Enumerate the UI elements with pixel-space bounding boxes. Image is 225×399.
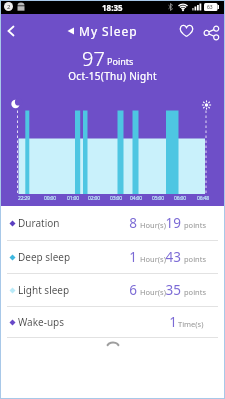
staticText: 6 bbox=[103, 281, 137, 299]
staticText: 00:00 bbox=[40, 195, 60, 202]
button[interactable] bbox=[2, 22, 20, 40]
staticText: 8 bbox=[103, 214, 137, 232]
staticText: 43 bbox=[147, 248, 181, 266]
staticText: 1 bbox=[103, 248, 137, 266]
staticText: 63 bbox=[207, 4, 213, 11]
button[interactable]: Duration bbox=[0, 206, 225, 241]
button[interactable]: Light sleep bbox=[0, 274, 225, 307]
staticText: Points bbox=[107, 55, 134, 67]
button[interactable]: Wake-ups bbox=[0, 307, 225, 338]
staticText: points bbox=[184, 220, 207, 230]
staticText: 2 bbox=[7, 3, 11, 11]
staticText: Oct-15(Thu) Night bbox=[0, 69, 225, 83]
staticText: 01:00 bbox=[63, 195, 83, 202]
staticText: 02:00 bbox=[84, 195, 104, 202]
staticText: points bbox=[184, 287, 207, 297]
staticText: Hour(s) bbox=[140, 287, 166, 297]
staticText: 04:00 bbox=[126, 195, 146, 202]
staticText: Deep sleep bbox=[18, 250, 71, 264]
button[interactable]: My Sleep bbox=[67, 23, 138, 39]
button[interactable] bbox=[0, 338, 225, 356]
staticText: 18:35 bbox=[102, 2, 123, 13]
staticText: Light sleep bbox=[18, 283, 70, 297]
staticText: Duration bbox=[18, 216, 60, 230]
staticText: Wake-ups bbox=[18, 315, 65, 329]
button[interactable] bbox=[203, 24, 220, 41]
staticText: 05:00 bbox=[148, 195, 168, 202]
button[interactable]: Deep sleep bbox=[0, 241, 225, 274]
staticText: 06:00 bbox=[170, 195, 190, 202]
staticText: My Sleep bbox=[79, 23, 138, 39]
button[interactable] bbox=[178, 23, 195, 40]
staticText: 03:00 bbox=[106, 195, 126, 202]
staticText: Hour(s) bbox=[140, 220, 166, 230]
staticText: 97 bbox=[82, 45, 105, 72]
staticText: 06:48 bbox=[193, 195, 213, 202]
staticText: 22:29 bbox=[14, 195, 34, 202]
staticText: points bbox=[184, 254, 207, 264]
staticText: 35 bbox=[147, 281, 181, 299]
staticText: Time(s) bbox=[178, 319, 204, 329]
staticText: 19 bbox=[147, 214, 181, 232]
staticText: 1 bbox=[143, 313, 177, 331]
staticText: Hour(s) bbox=[140, 254, 166, 264]
